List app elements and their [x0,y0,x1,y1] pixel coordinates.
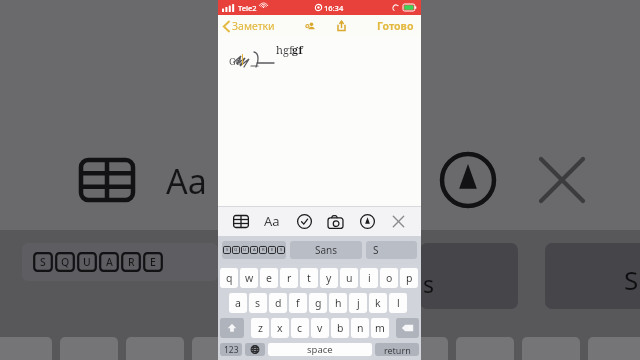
button[interactable]: g [309,293,327,313]
button[interactable]: k [369,293,387,313]
staticText: n [357,321,364,335]
staticText: Sans [315,243,338,257]
button[interactable]: e [260,268,278,288]
staticText: r [287,271,292,285]
staticText: m [375,321,385,335]
button[interactable]: Backspace [396,318,419,338]
button[interactable]: space [268,343,372,356]
staticText: U [83,255,91,269]
staticText: t [307,271,311,285]
staticText: a [235,296,241,310]
staticText: z [258,321,263,335]
staticText: v [317,321,323,335]
staticText: Tele2 [238,3,257,13]
staticText: j [357,296,360,310]
staticText: e [266,271,272,285]
staticText: 123 [224,344,239,356]
button[interactable]: Sans [290,241,362,259]
staticText: 16:34 [324,3,344,13]
button[interactable]: p [400,268,418,288]
button[interactable]: return [375,343,419,356]
staticText: b [337,321,344,335]
button[interactable]: Готово [375,19,416,33]
button[interactable]: b [331,318,349,338]
staticText: l [397,296,400,310]
staticText: R [262,247,265,253]
button[interactable]: Share [332,17,350,35]
staticText: S [226,247,229,253]
staticText: E [271,247,274,253]
button[interactable]: l [389,293,407,313]
button[interactable]: v [311,318,329,338]
button[interactable]: q [220,268,238,288]
button[interactable]: o [380,268,398,288]
staticText: o [386,271,393,285]
staticText: S [624,262,639,297]
button[interactable]: a [229,293,247,313]
staticText: space [307,343,333,356]
button[interactable]: Checklist [291,208,317,234]
button[interactable]: s [249,293,267,313]
button[interactable]: j [349,293,367,313]
staticText: gf [292,42,303,57]
button[interactable]: w [240,268,258,288]
button[interactable]: m [371,318,389,338]
staticText: d [275,296,282,310]
staticText: Заметки [232,19,275,33]
staticText: S [40,255,46,269]
staticText: h [335,296,342,310]
staticText: hgf [276,42,296,57]
button[interactable]: h [329,293,347,313]
button[interactable]: Add people [300,17,320,35]
staticText: q [226,271,233,285]
button[interactable]: i [360,268,378,288]
button[interactable]: f [289,293,307,313]
staticText: f [296,296,300,310]
button[interactable]: Заметки [221,19,276,33]
staticText: x [277,321,283,335]
button[interactable]: t [300,268,318,288]
staticText: k [375,296,381,310]
staticText: A [253,247,256,253]
staticText: w [245,271,254,285]
staticText: i [368,271,371,285]
button[interactable]: n [351,318,369,338]
button[interactable]: Shift [220,318,244,338]
staticText: g [315,296,322,310]
staticText: Gd [229,55,242,68]
staticText: Aa [166,158,207,204]
button[interactable]: Markup [354,208,380,234]
staticText: U [243,247,247,253]
button[interactable]: z [251,318,269,338]
button[interactable]: Camera [322,208,348,234]
staticText: p [406,271,413,285]
staticText: Готово [377,19,414,33]
staticText: y [326,271,332,285]
staticText: E [150,255,156,269]
button[interactable]: x [271,318,289,338]
staticText: Aa [264,212,280,230]
staticText: S [373,243,379,257]
button[interactable]: y [320,268,338,288]
button[interactable]: r [280,268,298,288]
staticText: s [423,268,435,299]
button[interactable]: S [366,241,417,259]
button[interactable]: S [222,241,286,259]
staticText: A [106,255,113,269]
button[interactable]: 123 [220,343,242,356]
staticText: c [297,321,303,335]
staticText: Q [234,247,238,253]
staticText: return [384,344,411,356]
button[interactable]: Close [385,208,411,234]
staticText: Q [61,255,70,269]
staticText: u [346,271,353,285]
button[interactable]: Table [228,208,254,234]
staticText: S [280,247,283,253]
button[interactable]: c [291,318,309,338]
button[interactable]: Aa [259,208,285,234]
button[interactable]: Change keyboard [245,343,265,356]
staticText: R [128,255,135,269]
button[interactable]: u [340,268,358,288]
staticText: s [255,296,261,310]
button[interactable]: d [269,293,287,313]
